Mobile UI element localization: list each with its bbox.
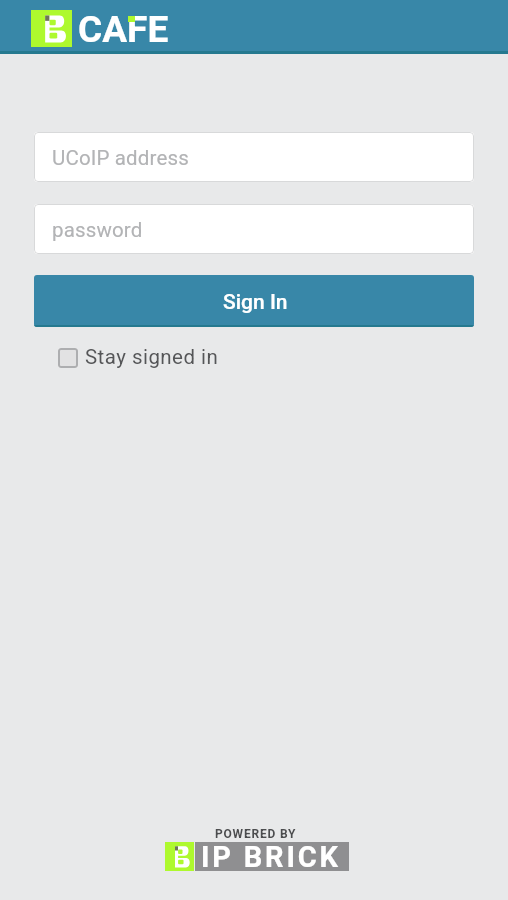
staticText: UCoIP address — [52, 146, 189, 170]
button[interactable]: Sign In — [34, 275, 474, 327]
staticText: password — [52, 218, 143, 242]
staticText: CAFE — [78, 8, 169, 51]
staticText: Sign In — [223, 290, 288, 315]
staticText: POWERED BY — [215, 827, 297, 841]
staticText: Stay signed in — [85, 345, 219, 369]
button[interactable]: password — [34, 204, 474, 254]
staticText: IP BRICK — [201, 840, 341, 869]
button[interactable]: Stay signed in — [58, 345, 219, 371]
button[interactable]: UCoIP address — [34, 132, 474, 182]
